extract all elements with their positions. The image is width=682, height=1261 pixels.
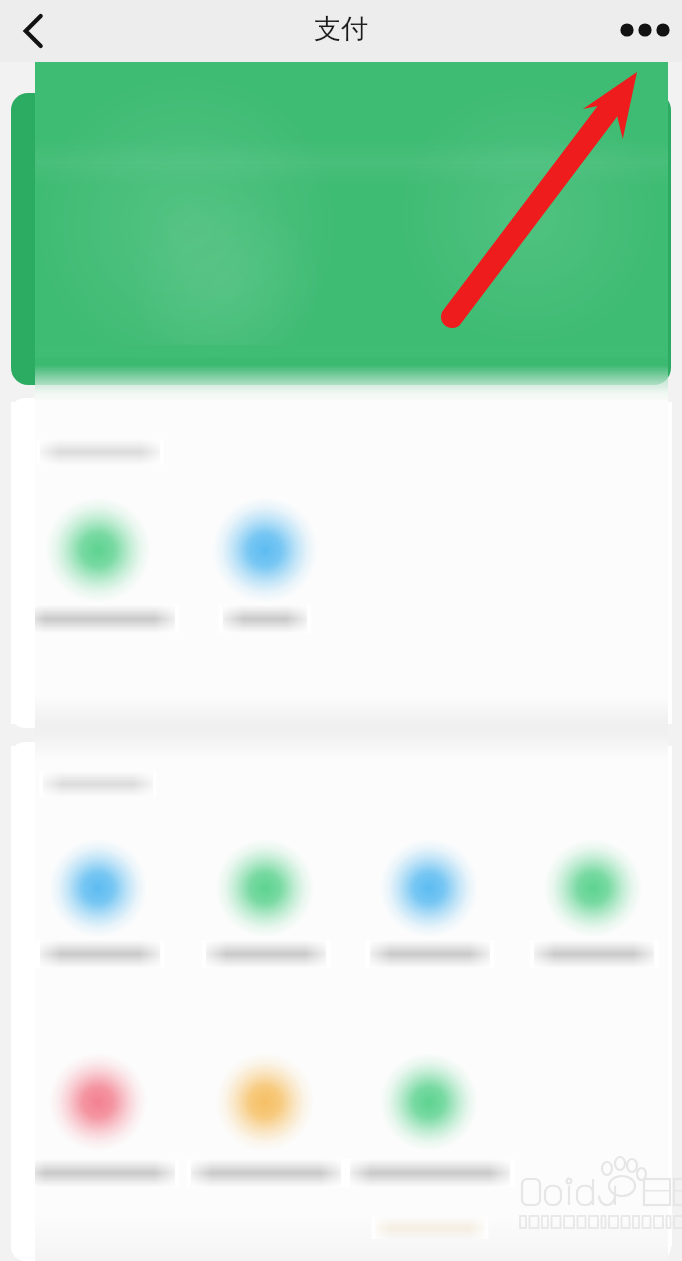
- button[interactable]: 返回: [0, 0, 62, 62]
- staticText: 支付: [314, 12, 368, 46]
- button[interactable]: 收付款: [11, 93, 671, 385]
- button[interactable]: 更多: [616, 0, 682, 62]
